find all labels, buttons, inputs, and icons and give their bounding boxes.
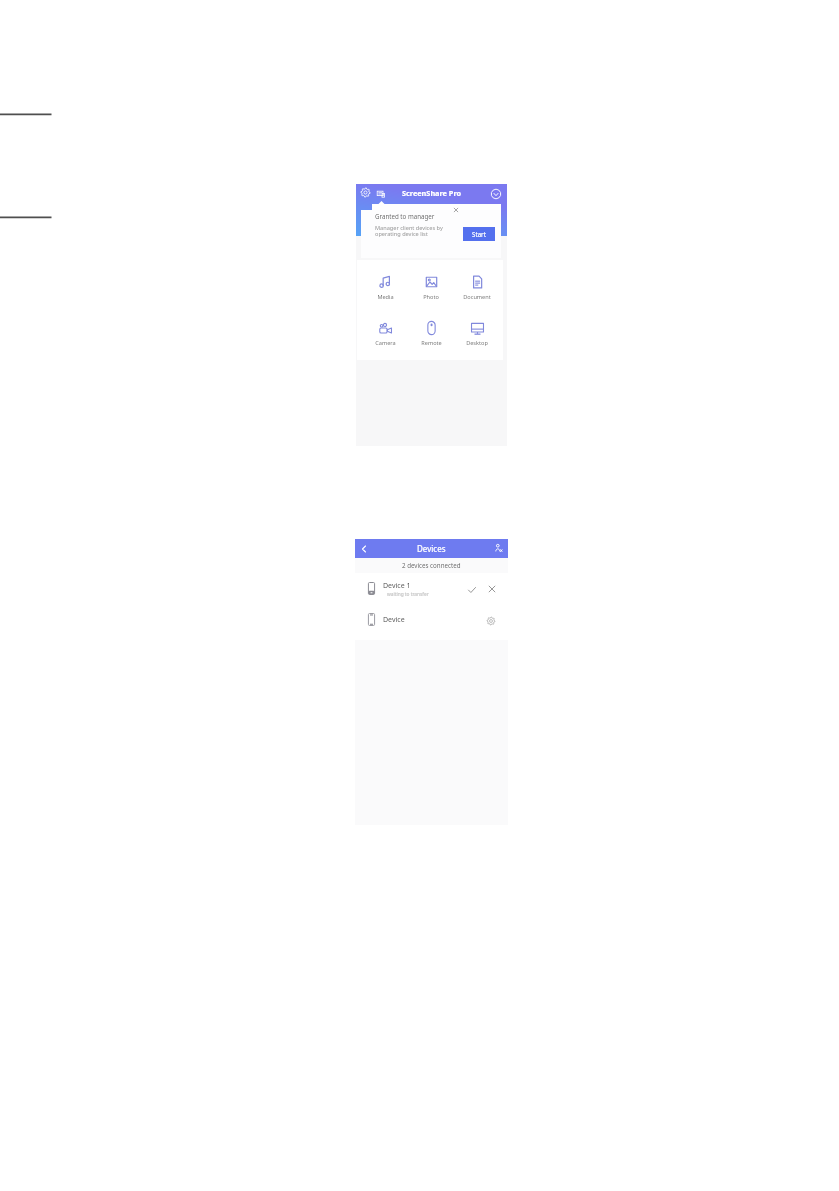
button[interactable]: Connected devices (376, 189, 386, 199)
staticText: Granted to manager (375, 212, 435, 220)
staticText: 2 devices connected (402, 561, 461, 569)
button[interactable]: Status (490, 188, 502, 200)
button[interactable]: Camera (363, 321, 407, 347)
staticText: Device (383, 615, 405, 625)
staticText: Document (463, 293, 491, 301)
button[interactable]: Photo (409, 275, 453, 301)
button[interactable]: Document (455, 275, 499, 301)
staticText: Photo (423, 293, 439, 301)
button[interactable]: Device 1 (355, 573, 508, 606)
staticText: Devices (417, 543, 446, 554)
staticText: ScreenShare Pro (402, 188, 462, 198)
button[interactable]: Remote (409, 321, 453, 347)
staticText: Remote (421, 339, 442, 347)
staticText: Device 1 (383, 581, 411, 591)
staticText: Start (472, 230, 486, 238)
staticText: Camera (375, 339, 396, 347)
staticText: waiting to transfer (387, 591, 429, 598)
button[interactable]: Accept (466, 584, 478, 596)
button[interactable]: Reject (486, 583, 498, 595)
staticText: Desktop (466, 339, 488, 347)
staticText: Media (377, 293, 394, 301)
button[interactable]: Desktop (455, 321, 499, 347)
button[interactable]: Device (355, 606, 508, 640)
button[interactable]: Media (363, 275, 407, 301)
button[interactable]: Device settings (485, 615, 497, 627)
staticText: Manager client devices by operating devi… (375, 224, 443, 238)
button[interactable]: Settings (360, 187, 371, 198)
button[interactable]: Add device (494, 543, 503, 553)
button[interactable]: Back (358, 543, 370, 555)
button[interactable]: Start (463, 227, 495, 241)
button[interactable]: Close (451, 205, 461, 215)
